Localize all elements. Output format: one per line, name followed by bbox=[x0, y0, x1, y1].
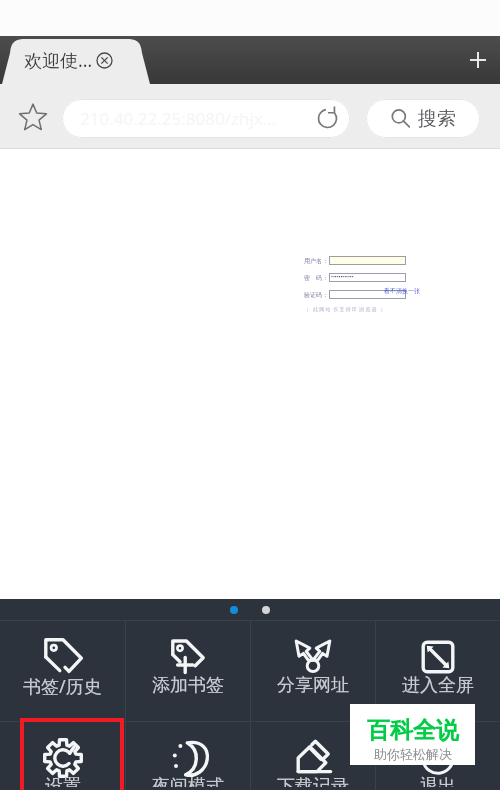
staticText: （ 此 网 站 仅 支 持 IE 浏 览 器 ） bbox=[304, 306, 386, 313]
button[interactable]: Bookmark bbox=[14, 98, 52, 136]
staticText: 添加书签 bbox=[152, 674, 224, 697]
staticText: 用户名： bbox=[304, 257, 328, 265]
staticText: 进入全屏 bbox=[402, 674, 474, 697]
staticText: 210.40.22.25:8080/zhjx… bbox=[80, 107, 277, 130]
staticText: 下载记录 bbox=[277, 775, 349, 787]
staticText: 夜间模式 bbox=[152, 775, 224, 787]
staticText: 助你轻松解决 bbox=[374, 746, 452, 762]
staticText: 搜索 bbox=[418, 107, 456, 131]
button[interactable]: 设置 bbox=[0, 722, 125, 790]
staticText: 分享网址 bbox=[277, 674, 349, 697]
button[interactable]: 210.40.22.25:8080/zhjx… bbox=[62, 99, 350, 138]
button[interactable]: New tab bbox=[456, 38, 500, 82]
button[interactable]: 添加书签 bbox=[126, 621, 250, 721]
staticText: 书签/历史 bbox=[23, 674, 102, 699]
button[interactable]: 下载记录 bbox=[251, 722, 375, 790]
button[interactable]: 分享网址 bbox=[251, 621, 375, 721]
button[interactable]: 夜间模式 bbox=[126, 722, 250, 790]
staticText: 欢迎使… bbox=[24, 48, 93, 73]
staticText: 设置 bbox=[45, 775, 81, 787]
button[interactable]: 书签/历史 bbox=[0, 621, 125, 721]
staticText: 验证码： bbox=[304, 291, 328, 299]
staticText: •••••••••••• bbox=[331, 274, 354, 281]
staticText: 百科全说 bbox=[367, 716, 459, 745]
staticText: 密 码： bbox=[304, 274, 328, 282]
button[interactable]: 搜索 bbox=[366, 99, 480, 138]
staticText: 退出 bbox=[420, 775, 456, 787]
button[interactable]: 进入全屏 bbox=[376, 621, 500, 721]
button[interactable]: 退出 bbox=[376, 722, 500, 790]
staticText: 看不清换一张 bbox=[384, 287, 420, 295]
button[interactable]: 欢迎使… bbox=[2, 36, 150, 84]
